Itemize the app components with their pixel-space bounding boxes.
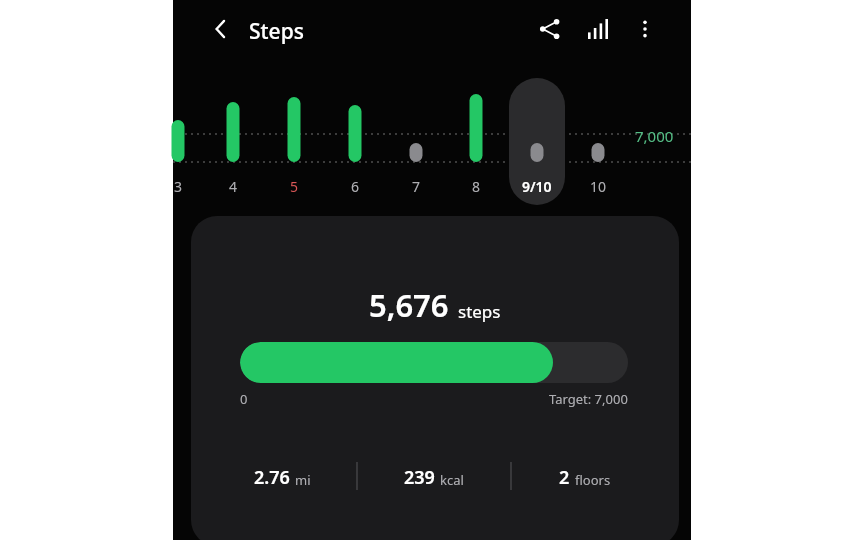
staticText: floors — [575, 471, 611, 489]
staticText: 5 — [290, 177, 299, 196]
staticText: 8 — [472, 177, 481, 196]
button[interactable]: 7 — [388, 172, 444, 200]
staticText: Target: 7,000 — [549, 390, 628, 408]
staticText: 10 — [590, 177, 607, 196]
staticText: 239 — [404, 465, 435, 490]
button[interactable]: 9/10 — [509, 172, 565, 200]
staticText: mi — [295, 471, 311, 489]
button[interactable]: 4 — [205, 172, 261, 200]
staticText: Steps — [249, 17, 304, 46]
button[interactable]: More options — [627, 11, 663, 47]
button[interactable]: Share — [532, 11, 568, 47]
staticText: 2 — [559, 465, 570, 490]
staticText: 9/10 — [522, 177, 552, 196]
button[interactable]: Back — [203, 11, 239, 47]
button[interactable]: 3 — [150, 172, 206, 200]
staticText: 0 — [240, 390, 248, 408]
button[interactable]: Steps — [249, 17, 304, 46]
staticText: steps — [458, 300, 501, 323]
button[interactable]: 5 — [266, 172, 322, 200]
button[interactable]: 5,676 — [191, 216, 679, 540]
button[interactable]: 6 — [327, 172, 383, 200]
button[interactable]: 8 — [448, 172, 504, 200]
staticText: 5,676 — [369, 284, 449, 326]
staticText: kcal — [440, 471, 464, 489]
staticText: 2.76 — [254, 465, 290, 490]
staticText: 4 — [229, 177, 238, 196]
button[interactable]: Chart — [580, 11, 616, 47]
button[interactable]: 2 — [515, 462, 655, 492]
button[interactable]: 2.76 — [212, 462, 352, 492]
button[interactable]: 10 — [570, 172, 626, 200]
staticText: 6 — [351, 177, 360, 196]
staticText: 3 — [174, 177, 183, 196]
staticText: 7,000 — [635, 126, 674, 146]
staticText: 7 — [412, 177, 421, 196]
button[interactable]: 239 — [364, 462, 504, 492]
